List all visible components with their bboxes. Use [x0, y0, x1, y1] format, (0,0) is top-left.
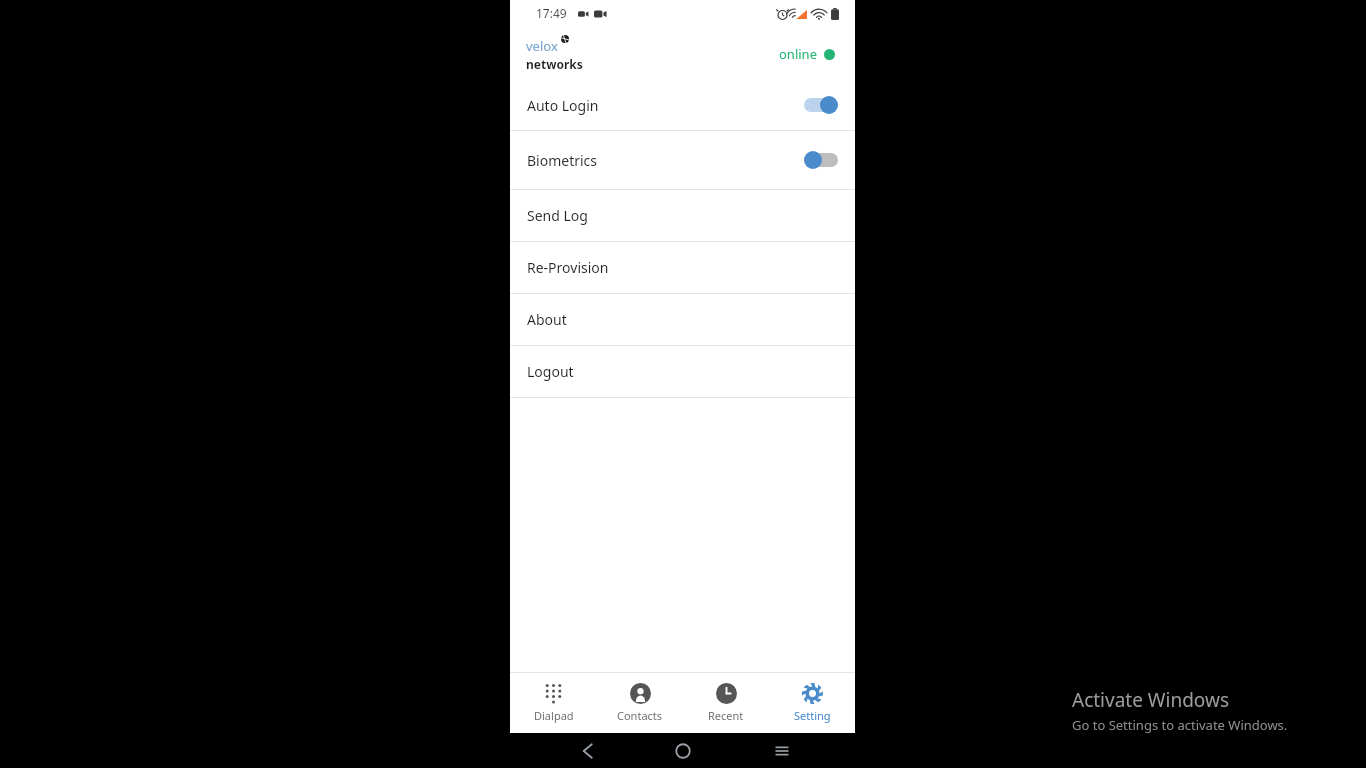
button[interactable]: Back	[572, 738, 598, 764]
button[interactable]: Biometrics	[510, 131, 855, 189]
button[interactable]: Off	[804, 150, 838, 170]
staticText: 17:49	[536, 5, 567, 21]
button[interactable]: Setting	[769, 673, 855, 733]
staticText: Activate Windows	[1072, 687, 1229, 713]
button[interactable]: Home	[670, 738, 696, 764]
staticText: Biometrics	[527, 151, 598, 170]
button[interactable]: Recent	[683, 673, 769, 733]
staticText: Setting	[794, 708, 831, 723]
button[interactable]: Recent apps	[769, 738, 795, 764]
staticText: Re-Provision	[527, 258, 609, 277]
button[interactable]: Re-Provision	[510, 242, 855, 293]
staticText: Go to Settings to activate Windows.	[1072, 716, 1288, 734]
button[interactable]: Logout	[510, 346, 855, 397]
button[interactable]: Send Log	[510, 190, 855, 241]
staticText: online	[779, 45, 817, 63]
button[interactable]: About	[510, 294, 855, 345]
button[interactable]: On	[804, 95, 838, 115]
staticText: Send Log	[527, 206, 588, 225]
staticText: Contacts	[617, 708, 663, 723]
staticText: About	[527, 310, 567, 329]
staticText: Logout	[527, 362, 574, 381]
staticText: Recent	[708, 708, 744, 723]
staticText: velox	[526, 37, 558, 55]
staticText: networks	[526, 56, 583, 72]
staticText: Auto Login	[527, 96, 599, 115]
button[interactable]: Contacts	[597, 673, 683, 733]
button[interactable]: Dialpad	[510, 673, 597, 733]
staticText: Dialpad	[534, 708, 574, 723]
button[interactable]: Auto Login	[510, 80, 855, 130]
